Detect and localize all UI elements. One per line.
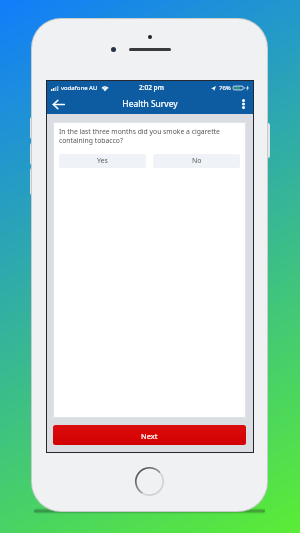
staticText: vodafone AU <box>61 84 98 92</box>
staticText: 2:02 pm <box>139 83 164 92</box>
staticText: 76% <box>219 84 231 92</box>
staticText: Yes <box>97 156 108 166</box>
staticText: In the last three months did you smoke a… <box>59 127 240 145</box>
staticText: Next <box>141 431 158 441</box>
button[interactable]: More options <box>236 97 250 111</box>
staticText: No <box>192 156 202 166</box>
button[interactable]: Next <box>53 425 246 445</box>
staticText: Health Survey <box>122 98 178 110</box>
button[interactable]: Back <box>50 96 66 112</box>
button[interactable]: No <box>153 154 240 168</box>
button[interactable]: Yes <box>59 154 146 168</box>
